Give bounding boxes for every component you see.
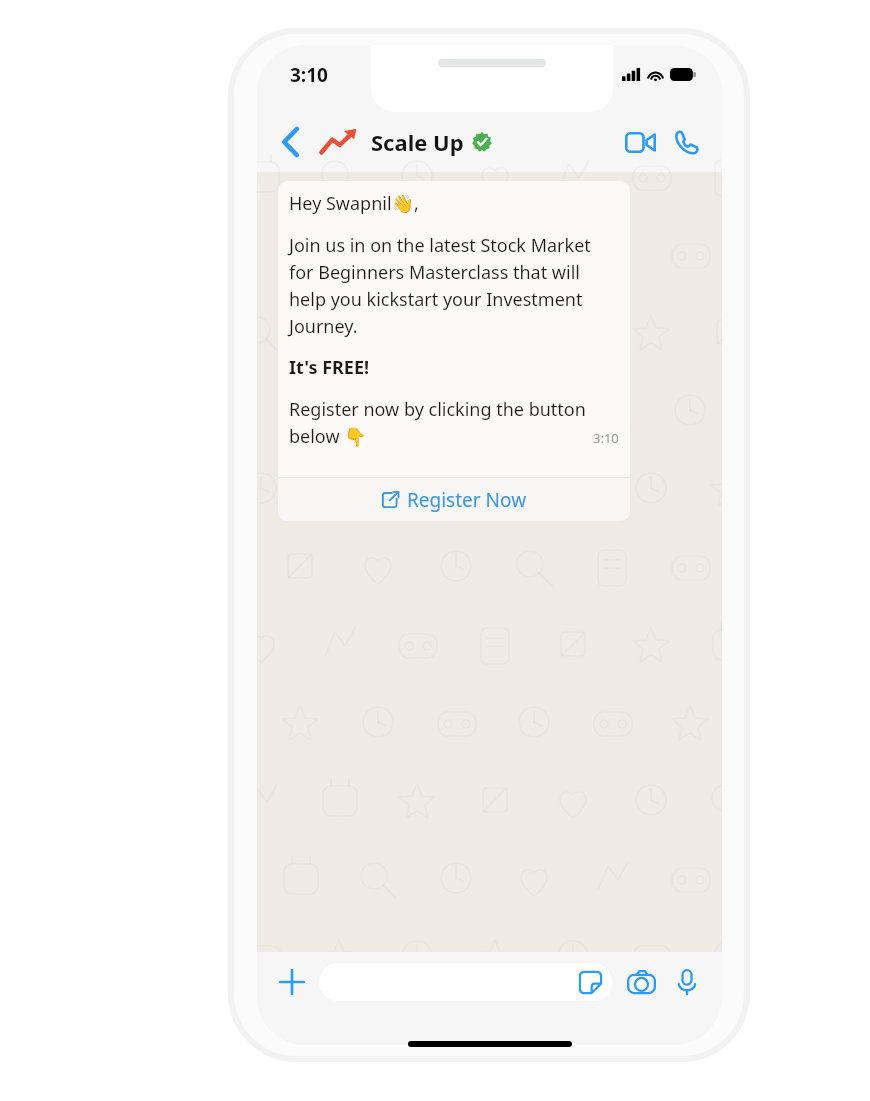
staticText: Register now by clicking the button belo… xyxy=(289,397,619,449)
staticText: Register Now xyxy=(407,487,527,513)
button[interactable]: Register Now xyxy=(278,478,630,521)
button[interactable]: Attach xyxy=(273,963,311,1001)
other: Stickers xyxy=(577,969,603,995)
button[interactable]: Stickers xyxy=(319,963,612,1001)
staticText: 3:10 xyxy=(593,429,619,447)
staticText: 3:10 xyxy=(290,62,328,88)
staticText: Hey Swapnil👋, xyxy=(289,191,419,216)
button[interactable]: Voice call xyxy=(666,122,706,162)
button[interactable]: Video call xyxy=(620,122,660,162)
button[interactable]: Voice message xyxy=(668,963,706,1001)
button[interactable]: Back xyxy=(273,125,307,159)
staticText: It's FREE! xyxy=(289,355,370,380)
button[interactable]: Camera xyxy=(622,963,660,1001)
staticText: Scale Up xyxy=(371,127,464,157)
staticText: Join us in on the latest Stock Market fo… xyxy=(289,233,619,338)
